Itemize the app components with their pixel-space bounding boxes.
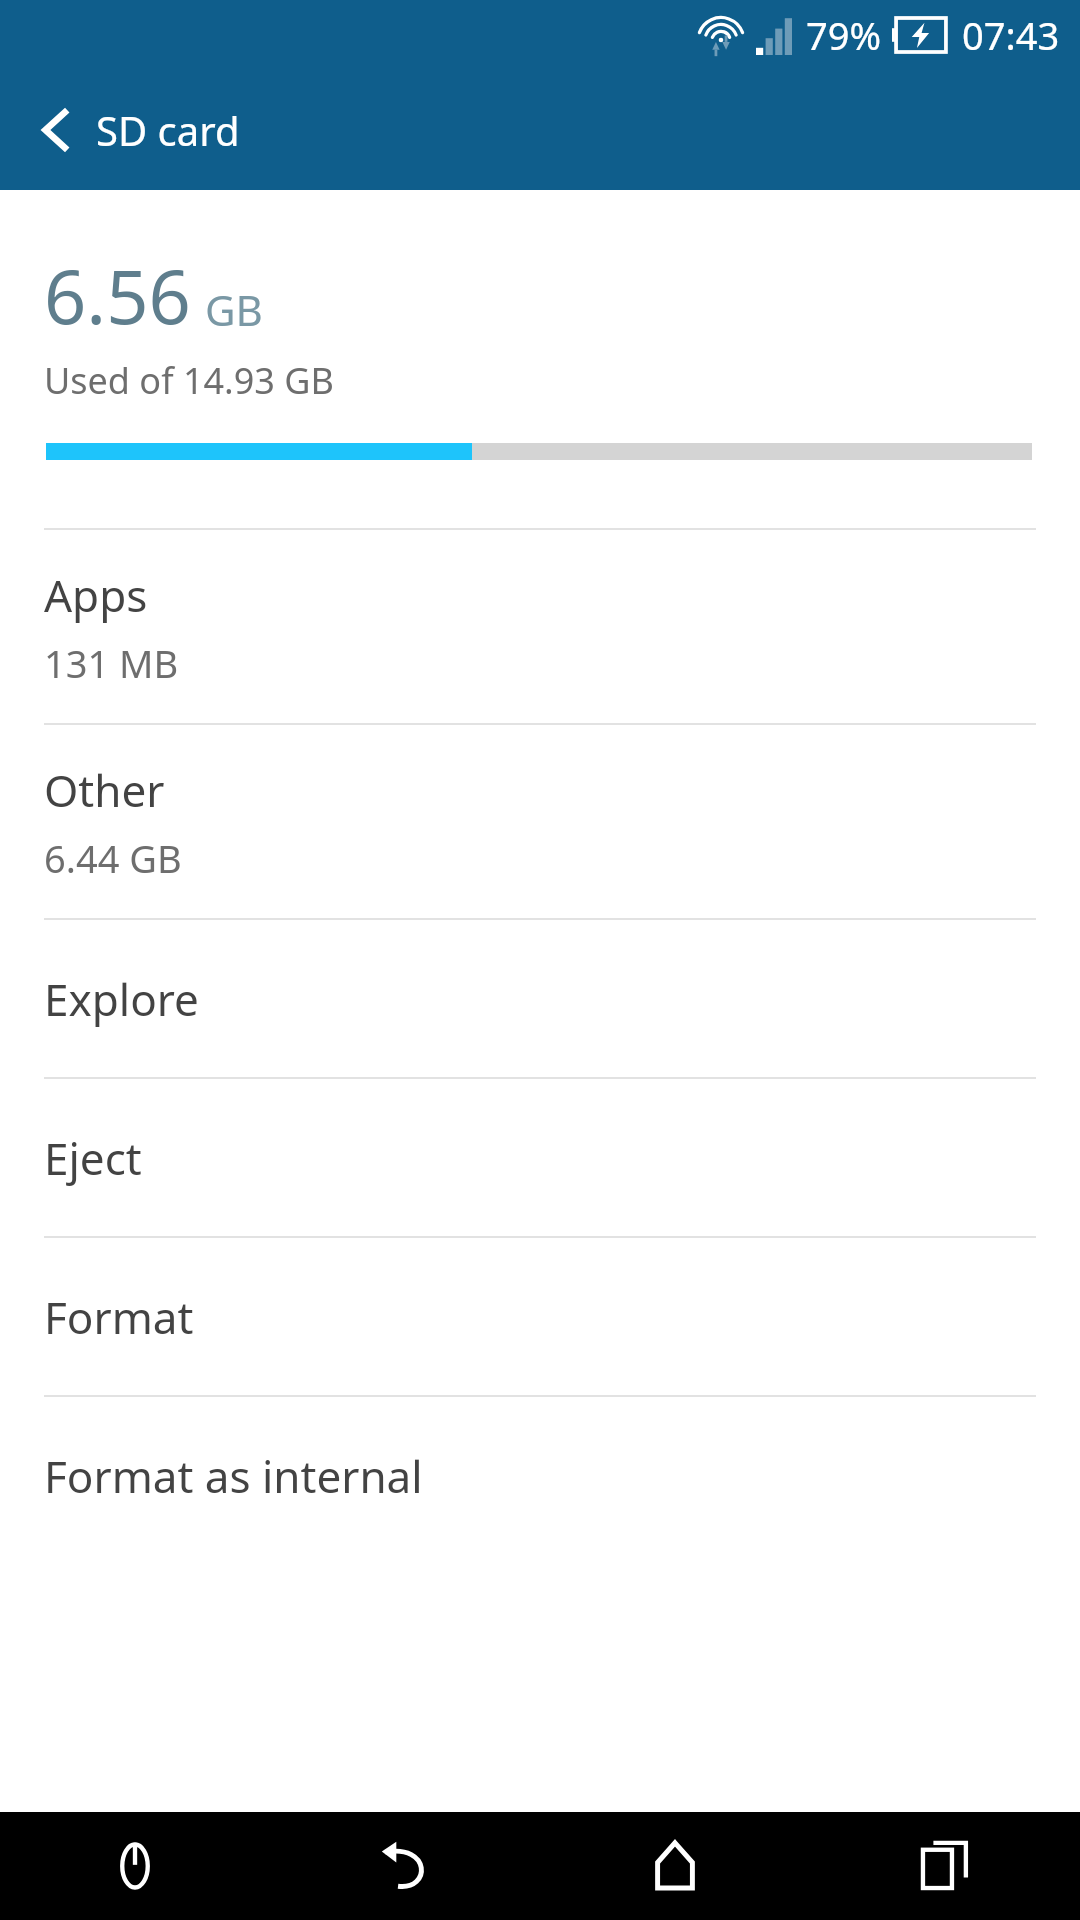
staticText: 6.56 (44, 245, 191, 346)
button[interactable]: Other (0, 725, 1080, 918)
button[interactable]: Format (0, 1238, 1080, 1395)
button[interactable]: Format as internal (0, 1397, 1080, 1554)
staticText: Format (44, 1287, 194, 1347)
button[interactable]: Back (18, 92, 94, 168)
button[interactable]: Eject (0, 1079, 1080, 1236)
staticText: GB (205, 281, 263, 338)
staticText: SD card (96, 103, 240, 157)
button[interactable]: Explore (0, 920, 1080, 1077)
staticText: Eject (44, 1128, 142, 1188)
staticText: Format as internal (44, 1446, 423, 1506)
button[interactable]: Back (270, 1812, 540, 1920)
button[interactable]: Power (0, 1812, 270, 1920)
button[interactable]: Recent apps (810, 1812, 1080, 1920)
staticText: Other (44, 760, 165, 820)
staticText: 131 MB (44, 637, 179, 689)
staticText: Explore (44, 969, 199, 1029)
button[interactable]: Home (540, 1812, 810, 1920)
staticText: Used of 14.93 GB (44, 356, 334, 405)
staticText: 07:43 (962, 9, 1060, 61)
staticText: 79% (806, 9, 882, 61)
staticText: 6.44 GB (44, 832, 182, 884)
button[interactable]: Apps (0, 530, 1080, 723)
staticText: Apps (44, 565, 148, 625)
